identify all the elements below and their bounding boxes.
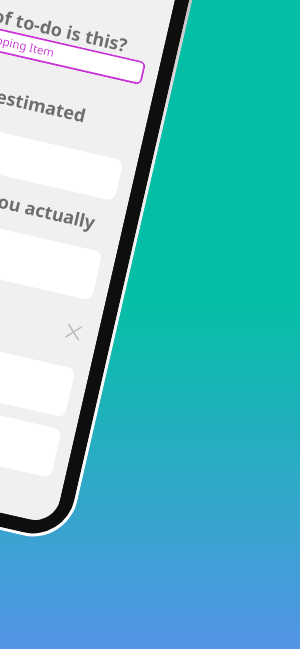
staticText: What kind of to-do is this?: [0, 0, 130, 58]
staticText: Shopping Item: [0, 27, 56, 61]
button[interactable]: [0, 101, 124, 201]
button[interactable]: Remove: [62, 321, 84, 342]
staticText: What is your estimated budget?: [0, 57, 148, 166]
staticText: How much did you actually spend: [0, 157, 125, 266]
button[interactable]: [0, 310, 76, 418]
button[interactable]: [0, 370, 62, 478]
button[interactable]: [0, 193, 103, 301]
button[interactable]: Shopping Item: [0, 3, 146, 85]
